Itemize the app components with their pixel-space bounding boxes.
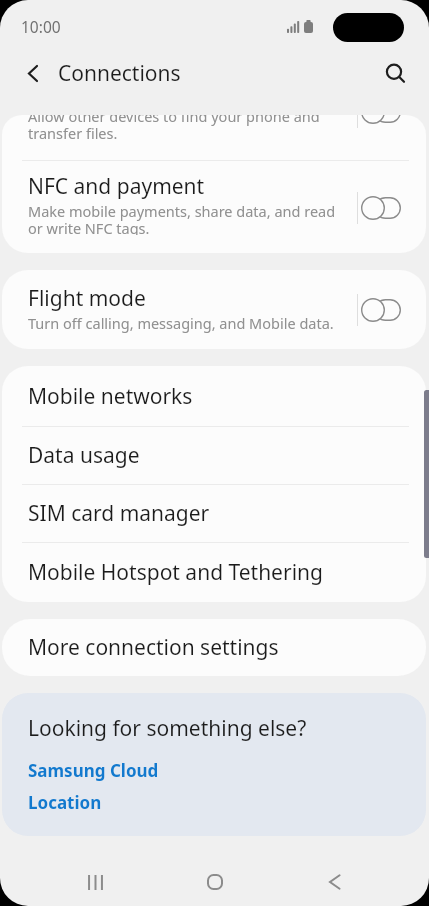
staticText: Make mobile payments, share data, and re… <box>28 201 336 235</box>
staticText: 10:00 <box>21 16 61 37</box>
staticText: Data usage <box>28 441 140 470</box>
button[interactable]: SIM card manager <box>2 484 426 542</box>
button[interactable]: NFC and payment <box>2 161 426 253</box>
button[interactable]: Toggle NFC and payment <box>358 182 426 234</box>
button[interactable]: Mobile networks <box>2 366 426 426</box>
staticText: Allow other devices to find your phone a… <box>28 115 320 143</box>
button[interactable]: Nearby Share <box>2 115 426 160</box>
button[interactable]: Search <box>376 54 416 94</box>
staticText: More connection settings <box>28 633 279 662</box>
button[interactable]: More connection settings <box>2 619 426 676</box>
staticText: Looking for something else? <box>28 714 307 743</box>
button[interactable]: Toggle Nearby Share <box>358 115 426 138</box>
button[interactable]: Back <box>306 854 362 906</box>
staticText: Flight mode <box>28 284 146 313</box>
button[interactable]: Location <box>28 791 102 814</box>
button[interactable]: Mobile Hotspot and Tethering <box>2 542 426 602</box>
staticText: SIM card manager <box>28 499 210 528</box>
button[interactable]: Samsung Cloud <box>28 759 159 782</box>
button[interactable]: Toggle Flight mode <box>358 284 426 336</box>
button[interactable]: Data usage <box>2 426 426 484</box>
staticText: Connections <box>58 59 181 88</box>
button[interactable]: Home <box>187 854 243 906</box>
button[interactable]: Recent apps <box>67 854 123 906</box>
staticText: Mobile Hotspot and Tethering <box>28 558 323 587</box>
button[interactable]: Back <box>13 53 53 93</box>
staticText: Turn off calling, messaging, and Mobile … <box>28 313 334 333</box>
staticText: NFC and payment <box>28 172 205 201</box>
button[interactable]: Flight mode <box>2 270 426 349</box>
staticText: Mobile networks <box>28 382 193 411</box>
